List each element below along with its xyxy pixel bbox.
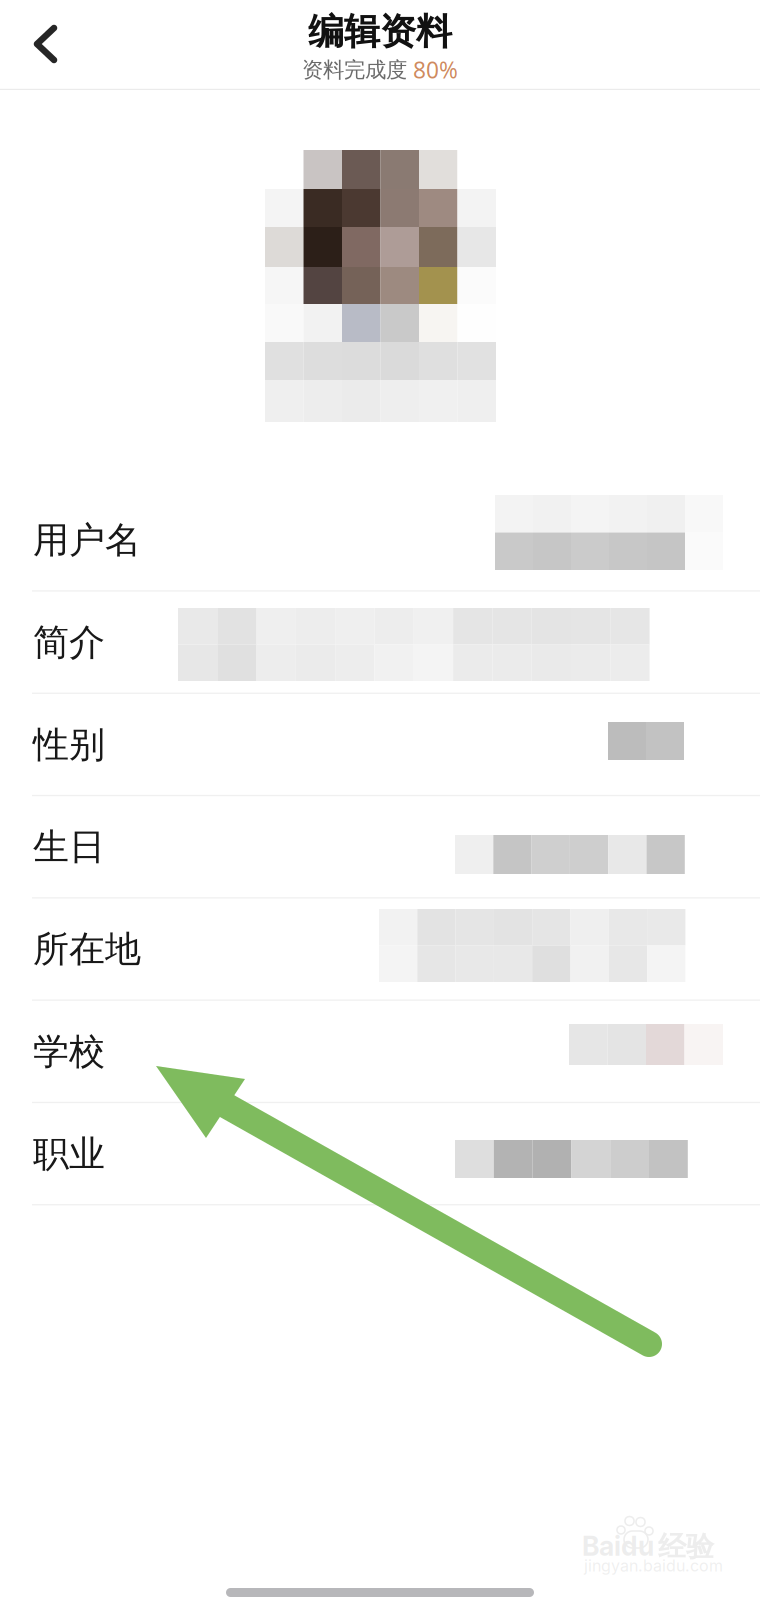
- button[interactable]: 返回: [6, 5, 82, 81]
- staticText: 资料完成度: [302, 56, 413, 83]
- staticText: 80%: [413, 54, 458, 85]
- button[interactable]: 性别: [0, 694, 760, 796]
- button[interactable]: 学校: [0, 1000, 760, 1103]
- staticText: 性别: [33, 722, 105, 767]
- staticText: 经验: [658, 1529, 714, 1564]
- button[interactable]: 职业: [0, 1103, 760, 1205]
- button[interactable]: 所在地: [0, 898, 760, 1000]
- staticText: 学校: [33, 1029, 105, 1074]
- staticText: 编辑资料: [308, 9, 452, 54]
- staticText: 生日: [33, 824, 105, 870]
- button[interactable]: 生日: [0, 796, 760, 898]
- button[interactable]: 简介: [0, 591, 760, 694]
- button[interactable]: 用户名: [0, 489, 760, 591]
- staticText: 职业: [33, 1131, 105, 1177]
- staticText: Baidu: [582, 1530, 654, 1562]
- staticText: 所在地: [33, 927, 141, 972]
- staticText: 简介: [33, 620, 105, 665]
- staticText: 用户名: [33, 517, 141, 563]
- staticText: jingyan.baidu.com: [584, 1556, 723, 1575]
